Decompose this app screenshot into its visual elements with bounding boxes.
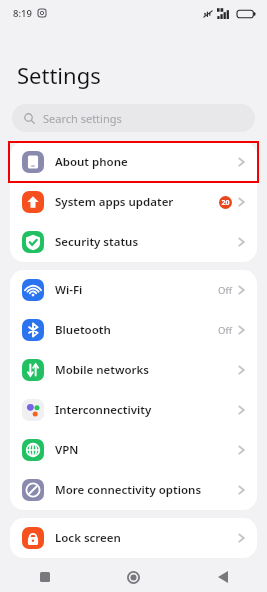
button[interactable]: Security status (10, 222, 257, 262)
staticText: Wi-Fi (55, 282, 218, 298)
staticText: More connectivity options (55, 482, 238, 498)
staticText: Off (218, 284, 232, 297)
staticText: Search settings (43, 111, 122, 126)
button[interactable]: System apps updater (10, 182, 257, 222)
button[interactable]: Wi-Fi (10, 270, 257, 310)
button[interactable]: Mobile networks (10, 350, 257, 390)
button[interactable]: VPN (10, 430, 257, 470)
button[interactable]: Back (178, 562, 267, 592)
button[interactable]: About phone (10, 142, 257, 182)
button[interactable]: Home (89, 562, 178, 592)
button[interactable]: More connectivity options (10, 470, 257, 510)
button[interactable]: Bluetooth (10, 310, 257, 350)
button[interactable]: Search settings (12, 104, 255, 132)
staticText: Bluetooth (55, 322, 218, 338)
button[interactable]: Recents (0, 562, 89, 592)
staticText: Settings (17, 60, 101, 90)
button[interactable]: Interconnectivity (10, 390, 257, 430)
staticText: About phone (55, 154, 238, 170)
button[interactable]: Lock screen (10, 518, 257, 558)
staticText: Interconnectivity (55, 402, 238, 418)
staticText: Lock screen (55, 530, 238, 546)
staticText: VPN (55, 442, 238, 458)
staticText: Off (218, 324, 232, 337)
staticText: 20 (221, 198, 230, 208)
staticText: System apps updater (55, 194, 219, 210)
staticText: Mobile networks (55, 362, 238, 378)
staticText: 8:19 (13, 7, 32, 20)
staticText: Security status (55, 234, 238, 250)
